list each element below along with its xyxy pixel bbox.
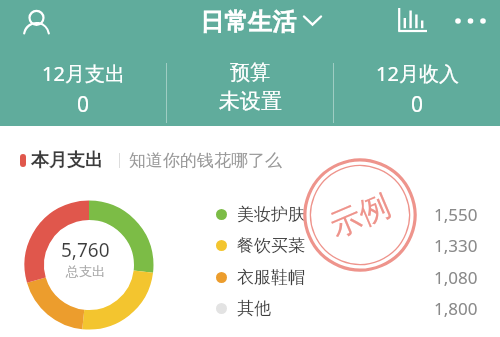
button[interactable]: 美妆护肤 (216, 199, 478, 229)
staticText: 衣服鞋帽 (237, 267, 305, 288)
button[interactable]: 12月支出 (0, 48, 166, 126)
button[interactable]: 其他 (216, 293, 478, 323)
staticText: 美妆护肤 (237, 204, 305, 225)
button[interactable]: 衣服鞋帽 (216, 262, 478, 292)
staticText: 餐饮买菜 (237, 235, 305, 256)
staticText: 日常生活 (200, 7, 296, 37)
staticText: 未设置 (219, 88, 282, 114)
staticText: 示例 (324, 185, 396, 245)
staticText: 总支出 (66, 263, 105, 279)
button[interactable]: 日常生活 (200, 7, 322, 37)
button[interactable]: 12月收入 (334, 48, 500, 126)
staticText: 0 (77, 90, 90, 119)
button[interactable] (392, 0, 432, 40)
button[interactable] (448, 2, 492, 40)
staticText: 其他 (237, 298, 271, 319)
staticText: 1,330 (434, 234, 478, 257)
staticText: 1,080 (434, 266, 478, 289)
button[interactable]: 餐饮买菜 (216, 230, 478, 260)
staticText: 1,550 (434, 203, 478, 226)
staticText: 12月收入 (376, 60, 459, 87)
staticText: 1,800 (434, 297, 478, 320)
staticText: 预算 (230, 60, 270, 85)
button[interactable]: 本月支出 (20, 146, 282, 174)
button[interactable]: 预算 (167, 48, 333, 126)
button[interactable] (20, 7, 52, 39)
staticText: 本月支出 (31, 149, 103, 172)
staticText: 知道你的钱花哪了么 (129, 150, 282, 171)
staticText: 12月支出 (42, 60, 125, 87)
staticText: 5,760 (61, 237, 110, 263)
staticText: 0 (411, 90, 424, 119)
